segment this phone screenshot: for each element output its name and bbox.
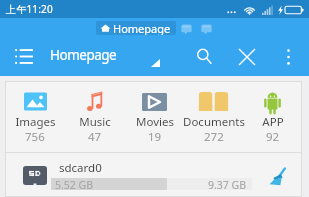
- staticText: 756: [25, 129, 45, 145]
- staticText: sdcard0: [59, 160, 102, 176]
- button[interactable]: Menu: [15, 49, 33, 64]
- button[interactable]: Documents: [184, 81, 243, 151]
- staticText: 19: [148, 129, 162, 145]
- button[interactable]: Music: [65, 81, 125, 151]
- button[interactable]: Window tab: [180, 22, 193, 35]
- button[interactable]: Clean: [263, 164, 291, 192]
- button[interactable]: APP: [243, 81, 302, 151]
- staticText: Images: [15, 114, 56, 130]
- button[interactable]: Movies: [125, 81, 184, 151]
- staticText: 9.37 GB: [208, 178, 247, 190]
- staticText: Documents: [183, 114, 245, 130]
- button[interactable]: Search: [196, 48, 213, 65]
- staticText: Homepage: [113, 21, 171, 35]
- staticText: Homepage: [50, 46, 117, 64]
- button[interactable]: More options: [283, 49, 294, 65]
- staticText: 上午11:20: [6, 2, 53, 16]
- staticText: Music: [79, 114, 111, 130]
- staticText: Movies: [136, 114, 174, 130]
- button[interactable]: Images: [5, 81, 65, 151]
- staticText: 47: [88, 129, 102, 145]
- staticText: 92: [266, 129, 280, 145]
- staticText: 272: [204, 129, 224, 145]
- staticText: 5.52 GB: [55, 178, 94, 190]
- button[interactable]: sdcard0: [5, 152, 302, 196]
- button[interactable]: Window tab 2: [200, 22, 213, 35]
- button[interactable]: Close: [239, 49, 255, 65]
- button[interactable]: Homepage: [96, 21, 176, 35]
- staticText: APP: [262, 114, 284, 130]
